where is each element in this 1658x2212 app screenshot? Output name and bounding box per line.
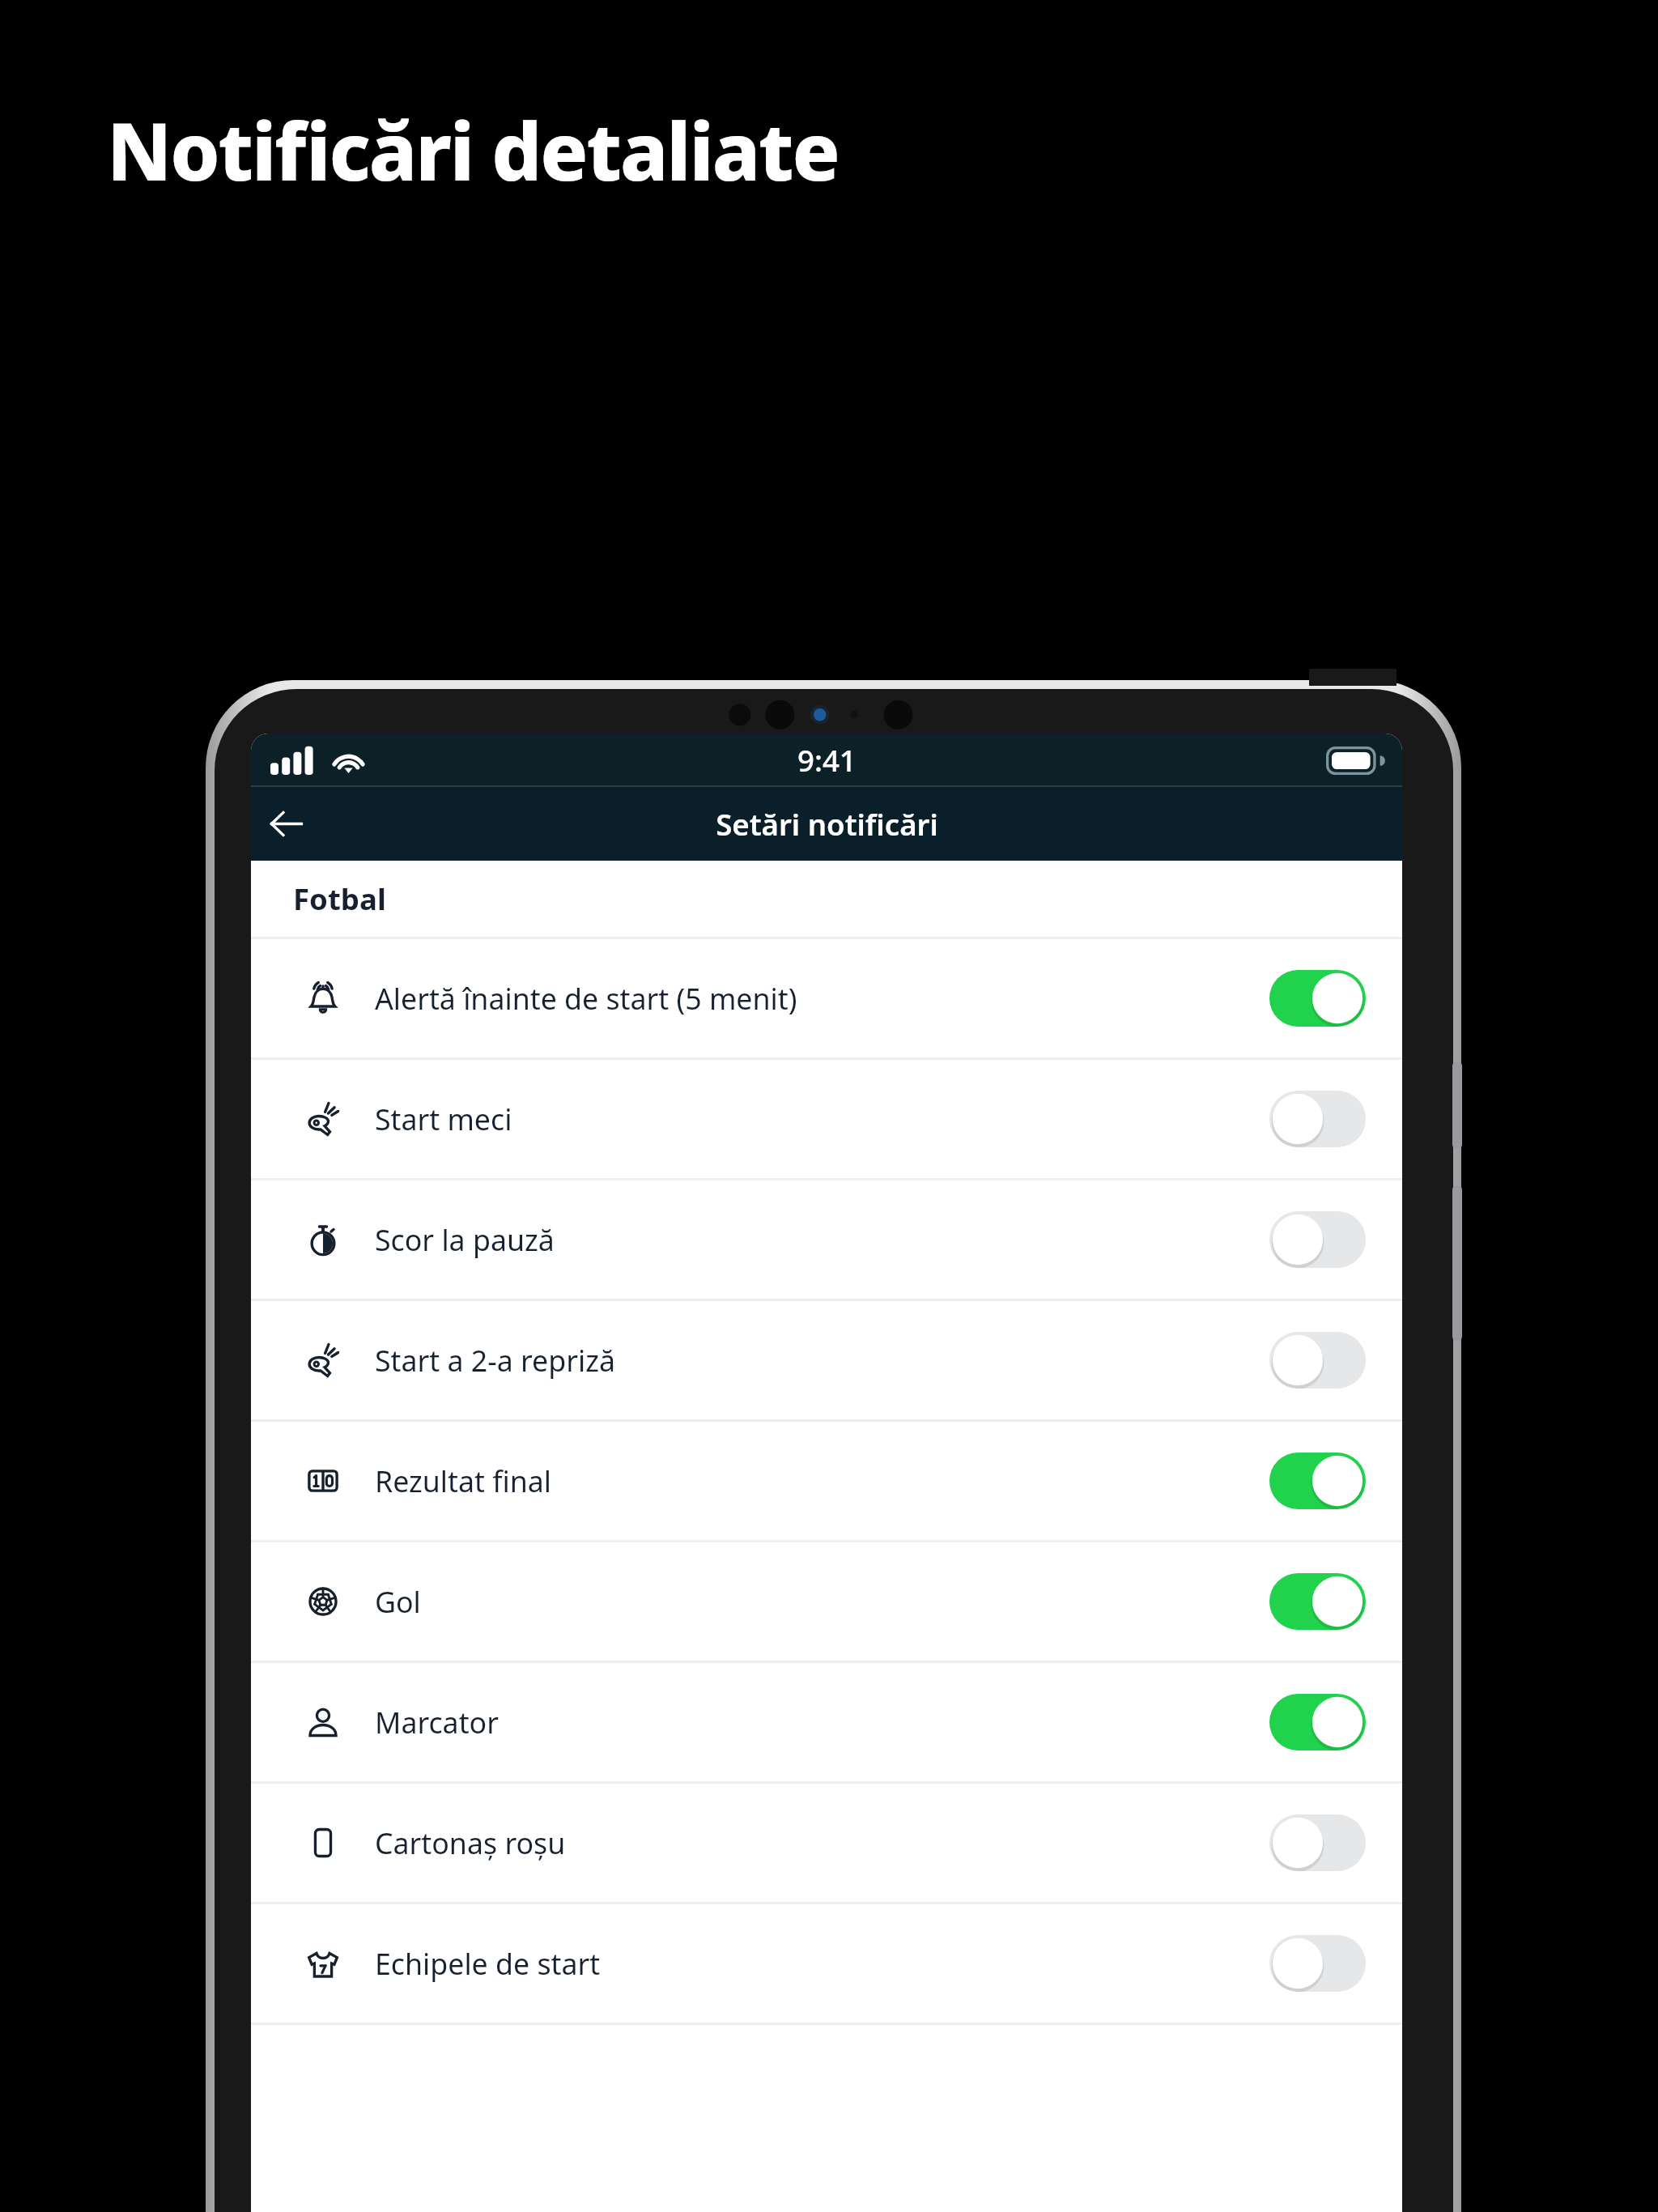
button[interactable]: Echipele de start — [251, 1904, 1402, 2023]
staticText: 9:41 — [797, 740, 857, 781]
button[interactable]: Scor la pauză — [251, 1180, 1402, 1299]
staticText: Rezultat final — [375, 1461, 1269, 1501]
button[interactable]: Dezactivat — [1269, 1814, 1366, 1871]
staticText: Scor la pauză — [375, 1220, 1269, 1260]
staticText: Start a 2-a repriză — [375, 1341, 1269, 1380]
staticText: Start meci — [375, 1100, 1269, 1139]
button[interactable]: Start a 2-a repriză — [251, 1301, 1402, 1419]
button[interactable]: Activat — [1269, 970, 1366, 1027]
button[interactable]: Activat — [1269, 1573, 1366, 1630]
button[interactable]: Gol — [251, 1542, 1402, 1661]
button[interactable]: Dezactivat — [1269, 1935, 1366, 1992]
staticText: Gol — [375, 1582, 1269, 1622]
button[interactable]: Înapoi — [251, 789, 321, 859]
button[interactable]: Start meci — [251, 1060, 1402, 1178]
button[interactable]: Dezactivat — [1269, 1091, 1366, 1147]
button[interactable]: Marcator — [251, 1663, 1402, 1781]
staticText: Fotbal — [293, 878, 386, 919]
staticText: Setări notificări — [716, 804, 938, 844]
button[interactable]: Activat — [1269, 1694, 1366, 1750]
button[interactable]: Cartonaș roșu — [251, 1784, 1402, 1902]
button[interactable]: Activat — [1269, 1453, 1366, 1509]
staticText: Echipele de start — [375, 1944, 1269, 1984]
button[interactable]: Rezultat final — [251, 1422, 1402, 1540]
staticText: Marcator — [375, 1703, 1269, 1742]
button[interactable]: Dezactivat — [1269, 1332, 1366, 1389]
staticText: Notificări detaliate — [107, 96, 839, 204]
staticText: Alertă înainte de start (5 menit) — [375, 979, 1269, 1019]
button[interactable]: Alertă înainte de start (5 menit) — [251, 939, 1402, 1057]
button[interactable]: Dezactivat — [1269, 1211, 1366, 1268]
staticText: Cartonaș roșu — [375, 1823, 1269, 1863]
